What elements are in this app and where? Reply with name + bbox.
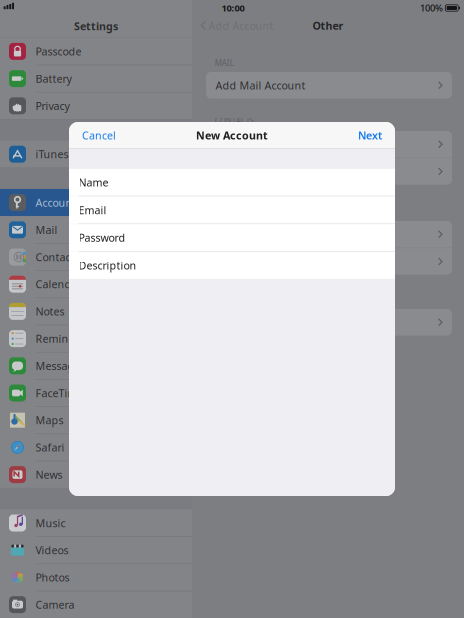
staticText: Maps <box>35 413 63 427</box>
staticText: Contacts <box>35 250 79 264</box>
staticText: CONTACTS <box>215 116 254 126</box>
staticText: Password <box>78 231 125 245</box>
button[interactable]: News <box>0 461 192 488</box>
staticText: Accounts <box>35 195 81 210</box>
button[interactable]: Music <box>0 509 192 537</box>
staticText: Calendar <box>35 277 81 291</box>
staticText: Reminders <box>35 331 90 346</box>
staticText: Add Mail Account <box>215 78 305 92</box>
staticText: Default Account <box>215 164 297 179</box>
staticText: News <box>35 467 62 482</box>
staticText: Cancel <box>82 128 116 142</box>
button[interactable]: Add Mail Account <box>206 72 452 98</box>
button[interactable]: Videos <box>0 537 192 564</box>
staticText: Music <box>35 516 65 530</box>
staticText: Notes <box>35 304 64 318</box>
button[interactable]: Add Contacts Account <box>206 131 452 157</box>
staticText: iTunes <box>35 147 68 161</box>
button[interactable]: Notes <box>0 298 192 325</box>
button[interactable]: Add Calendar Account <box>206 221 452 247</box>
staticText: Other <box>312 18 343 33</box>
button[interactable]: Password <box>69 224 395 251</box>
staticText: Messages <box>35 359 85 373</box>
button[interactable]: Accounts <box>0 189 192 216</box>
staticText: Settings <box>74 19 118 33</box>
button[interactable]: Default Alert Times <box>206 248 452 275</box>
button[interactable]: Mail <box>0 216 192 243</box>
staticText: Battery <box>35 71 71 86</box>
button[interactable]: Default Account <box>206 158 452 185</box>
button[interactable]: Passcode <box>0 38 192 65</box>
button[interactable]: Safari <box>0 434 192 461</box>
staticText: 10:00 <box>221 2 244 14</box>
button[interactable]: Battery <box>0 65 192 92</box>
button[interactable]: Calendar <box>0 271 192 298</box>
staticText: Safari <box>35 440 64 454</box>
staticText: Camera <box>35 597 74 612</box>
staticText: Name <box>78 175 108 189</box>
staticText: Description <box>78 258 136 272</box>
button[interactable]: Privacy <box>0 92 192 119</box>
staticText: Videos <box>35 543 68 557</box>
button[interactable]: Email <box>69 196 395 223</box>
button[interactable]: Photos <box>0 564 192 591</box>
button[interactable]: Camera <box>0 591 192 618</box>
button[interactable]: Contacts <box>0 243 192 271</box>
button[interactable]: iTunes <box>0 141 192 168</box>
staticText: Photos <box>35 570 69 584</box>
button[interactable]: Add Subscribed Calendar <box>206 309 452 335</box>
staticText: 100% <box>420 2 443 14</box>
button[interactable]: Next <box>345 122 395 148</box>
button[interactable]: Reminders <box>0 325 192 352</box>
button[interactable]: Name <box>69 169 395 196</box>
staticText: Mail <box>35 223 57 237</box>
button[interactable]: Description <box>69 252 395 279</box>
staticText: MAIL <box>215 58 234 68</box>
staticText: Email <box>78 203 106 217</box>
staticText: FaceTime <box>35 386 83 400</box>
staticText: Next <box>358 128 382 142</box>
button[interactable]: Cancel <box>69 122 129 148</box>
button[interactable]: FaceTime <box>0 379 192 407</box>
staticText: Add Account <box>208 18 273 33</box>
staticText: Passcode <box>35 44 81 58</box>
staticText: Privacy <box>35 99 69 113</box>
staticText: Add Contacts Account <box>215 137 327 151</box>
button[interactable]: Add Account <box>200 16 273 34</box>
button[interactable]: Messages <box>0 352 192 379</box>
staticText: New Account <box>196 128 268 142</box>
button[interactable]: Maps <box>0 407 192 434</box>
